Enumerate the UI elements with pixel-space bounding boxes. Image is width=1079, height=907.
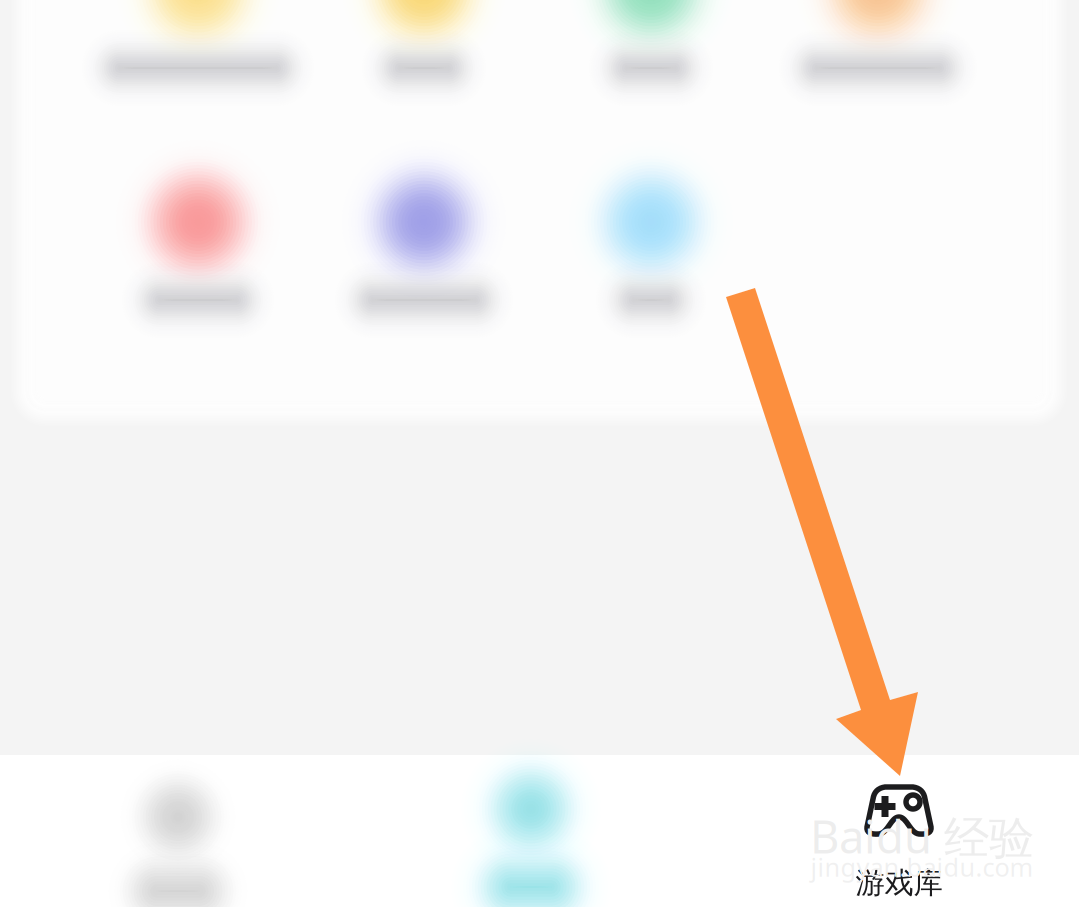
button[interactable]: Discover tab <box>351 755 711 907</box>
button[interactable] <box>0 0 1079 907</box>
staticText: Baidu 经验 <box>810 806 1034 866</box>
button[interactable] <box>0 0 1079 907</box>
button[interactable] <box>0 0 1079 907</box>
button[interactable] <box>0 0 1079 907</box>
button[interactable] <box>0 0 1079 907</box>
button[interactable]: 游戏库 <box>719 755 1079 907</box>
staticText: 游戏库 <box>855 865 942 901</box>
button[interactable] <box>0 0 1079 907</box>
button[interactable] <box>0 0 1079 907</box>
button[interactable]: Home tab <box>0 755 358 907</box>
staticText: jingyan.baidu.com <box>810 850 1033 884</box>
